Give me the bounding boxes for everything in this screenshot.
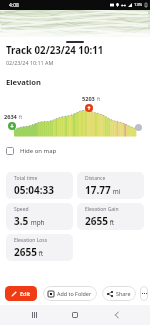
staticText: 3.5 — [14, 214, 29, 228]
staticText: ft — [37, 249, 44, 258]
button[interactable]: Recents — [26, 307, 42, 323]
staticText: Add to Folder — [57, 290, 92, 297]
staticText: ft — [108, 218, 115, 227]
button[interactable]: Elevation Gain — [77, 203, 144, 230]
button[interactable]: Back — [109, 307, 125, 323]
staticText: Elevation Loss — [14, 237, 48, 244]
button[interactable]: Add to Folder — [43, 286, 97, 301]
staticText: Hide on map — [20, 147, 57, 155]
staticText: Share — [116, 290, 131, 297]
button[interactable]: Hide on map — [6, 143, 57, 158]
staticText: 5203 — [82, 95, 95, 103]
staticText: 13% — [134, 2, 143, 8]
staticText: Elevation — [6, 77, 42, 87]
staticText: Track 02/23/24 10:11 — [6, 44, 104, 57]
staticText: 17.77 — [85, 183, 111, 197]
staticText: ft — [97, 96, 101, 102]
button[interactable]: More options — [140, 286, 148, 301]
button[interactable]: Home — [67, 307, 83, 323]
staticText: 2634 — [4, 113, 17, 121]
button[interactable]: Speed — [6, 203, 73, 230]
staticText: 02/23/24 10:11 AM — [6, 59, 54, 66]
staticText: Distance — [85, 175, 106, 182]
staticText: mi — [111, 187, 121, 196]
staticText: 2655 — [14, 245, 37, 259]
button[interactable]: Elevation Loss — [6, 234, 73, 261]
staticText: Edit — [20, 290, 31, 298]
staticText: mph — [29, 218, 45, 227]
button[interactable]: Edit — [5, 286, 37, 301]
button[interactable]: Distance — [77, 172, 144, 199]
staticText: ft — [19, 114, 23, 120]
staticText: 4:08 — [9, 2, 19, 9]
staticText: 2655 — [85, 214, 108, 228]
staticText: Elevation Gain — [85, 206, 119, 213]
staticText: 05:04:33 — [14, 183, 54, 197]
button[interactable]: Total time — [6, 172, 73, 199]
button[interactable]: Share — [102, 286, 136, 301]
staticText: Speed — [14, 206, 29, 213]
staticText: Total time — [14, 175, 38, 182]
